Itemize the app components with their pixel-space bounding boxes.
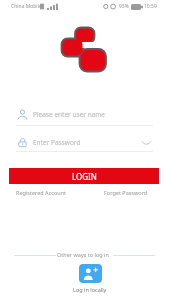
button[interactable]: Registered Account xyxy=(16,189,67,196)
button[interactable]: Forget Password xyxy=(104,189,148,196)
staticText: 10:59 xyxy=(144,3,157,10)
button[interactable]: Show password xyxy=(140,136,153,149)
other: Log in locally xyxy=(79,264,102,283)
staticText: 93% xyxy=(119,3,129,10)
button[interactable]: LOGIN xyxy=(9,168,159,184)
staticText: Other ways to log in xyxy=(57,251,109,258)
staticText: China Mobile xyxy=(11,3,42,10)
staticText: Please enter user name xyxy=(33,110,106,119)
staticText: Log in locally xyxy=(73,286,107,293)
staticText: LOGIN xyxy=(72,171,97,182)
staticText: Enter Password xyxy=(33,138,81,147)
button[interactable]: Log in locally xyxy=(73,264,107,293)
